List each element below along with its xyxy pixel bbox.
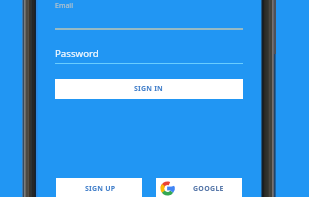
- button[interactable]: Google: [156, 178, 242, 197]
- staticText: GOOGLE: [193, 184, 224, 194]
- button[interactable]: SIGN IN: [55, 79, 243, 99]
- staticText: SIGN IN: [134, 84, 163, 94]
- button[interactable]: SIGN UP: [56, 178, 142, 197]
- staticText: Email: [55, 1, 73, 11]
- staticText: SIGN UP: [85, 184, 116, 194]
- other: Google: [160, 181, 175, 196]
- staticText: Password: [55, 47, 99, 60]
